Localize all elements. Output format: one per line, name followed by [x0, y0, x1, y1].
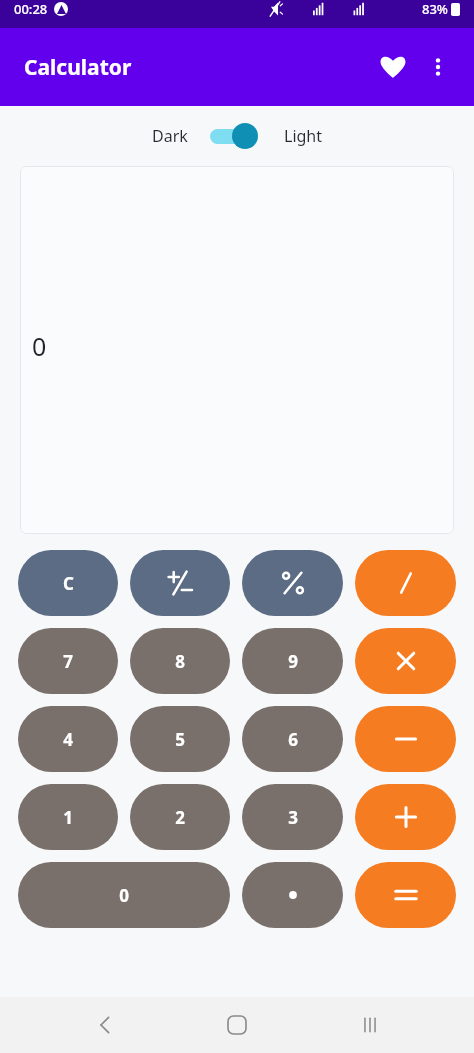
- staticText: 3: [288, 806, 298, 829]
- staticText: 4: [63, 728, 73, 751]
- button[interactable]: [355, 628, 456, 694]
- button[interactable]: 4: [18, 706, 118, 772]
- button[interactable]: More options: [416, 45, 460, 89]
- staticText: Calculator: [24, 53, 132, 82]
- button[interactable]: [355, 862, 456, 928]
- button[interactable]: 7: [18, 628, 118, 694]
- staticText: 5: [175, 728, 185, 751]
- button[interactable]: [355, 784, 456, 850]
- staticText: 0: [119, 884, 129, 907]
- button[interactable]: Back: [77, 997, 133, 1053]
- button[interactable]: 6: [242, 706, 343, 772]
- button[interactable]: Favorite: [370, 44, 416, 90]
- button[interactable]: [355, 550, 456, 616]
- staticText: Dark: [152, 125, 188, 147]
- button[interactable]: 5: [130, 706, 230, 772]
- button[interactable]: 2: [130, 784, 230, 850]
- staticText: 8: [175, 650, 185, 673]
- button[interactable]: 0: [18, 862, 230, 928]
- button[interactable]: [130, 550, 230, 616]
- button[interactable]: 8: [130, 628, 230, 694]
- staticText: 0: [32, 329, 47, 363]
- button[interactable]: Home: [209, 997, 265, 1053]
- button[interactable]: 3: [242, 784, 343, 850]
- staticText: 83%: [422, 0, 448, 18]
- button[interactable]: [210, 119, 262, 153]
- button[interactable]: [355, 706, 456, 772]
- staticText: 00:28: [14, 0, 48, 18]
- button[interactable]: Recent apps: [342, 997, 398, 1053]
- button[interactable]: C: [18, 550, 118, 616]
- staticText: 2: [175, 806, 185, 829]
- staticText: Light: [284, 125, 323, 147]
- button[interactable]: [242, 550, 343, 616]
- staticText: 7: [63, 650, 73, 673]
- staticText: 9: [288, 650, 298, 673]
- staticText: C: [63, 572, 74, 595]
- button[interactable]: 9: [242, 628, 343, 694]
- button[interactable]: 1: [18, 784, 118, 850]
- button[interactable]: [242, 862, 343, 928]
- staticText: 1: [63, 806, 73, 829]
- staticText: 6: [288, 728, 298, 751]
